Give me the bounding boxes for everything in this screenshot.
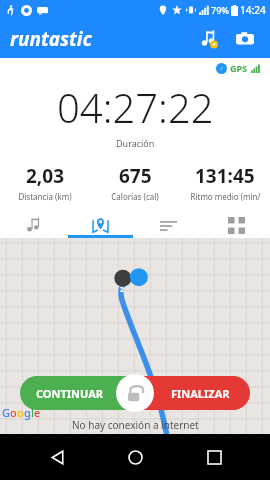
button[interactable]: FINALIZAR: [135, 376, 250, 410]
staticText: l: [31, 405, 34, 420]
staticText: 131:45: [195, 163, 255, 189]
staticText: FINALIZAR: [171, 386, 230, 401]
staticText: o: [10, 405, 17, 420]
button[interactable]: Home: [113, 435, 157, 479]
staticText: No hay conexión a internet: [72, 418, 199, 432]
staticText: runtastic: [10, 26, 92, 52]
staticText: Ritmo medio (min/: [190, 191, 261, 202]
staticText: Calorías (cal): [111, 191, 159, 202]
staticText: Distancia (km): [18, 191, 72, 202]
staticText: 2,03: [26, 163, 65, 189]
button[interactable]: Recent apps: [192, 435, 236, 479]
staticText: 2: [120, 285, 125, 295]
button[interactable]: Map tab: [67, 212, 134, 238]
button[interactable]: Unlock: [116, 374, 154, 412]
staticText: Duración: [116, 137, 155, 149]
button[interactable]: Music: [194, 24, 224, 54]
button[interactable]: Back: [35, 435, 79, 479]
staticText: CONTINUAR: [36, 386, 104, 401]
staticText: 79%: [211, 4, 229, 16]
staticText: 675: [119, 163, 152, 189]
staticText: G: [2, 405, 10, 420]
staticText: 14:24: [240, 3, 266, 17]
staticText: g: [24, 405, 31, 420]
button[interactable]: CONTINUAR: [20, 376, 135, 410]
button[interactable]: List tab: [134, 212, 202, 238]
button[interactable]: Camera: [230, 24, 260, 54]
button[interactable]: Music tab: [0, 212, 67, 238]
staticText: o: [17, 405, 24, 420]
button[interactable]: Grid tab: [202, 212, 270, 238]
staticText: 04:27:22: [57, 80, 214, 134]
staticText: GPS: [230, 62, 248, 74]
staticText: e: [34, 405, 41, 420]
